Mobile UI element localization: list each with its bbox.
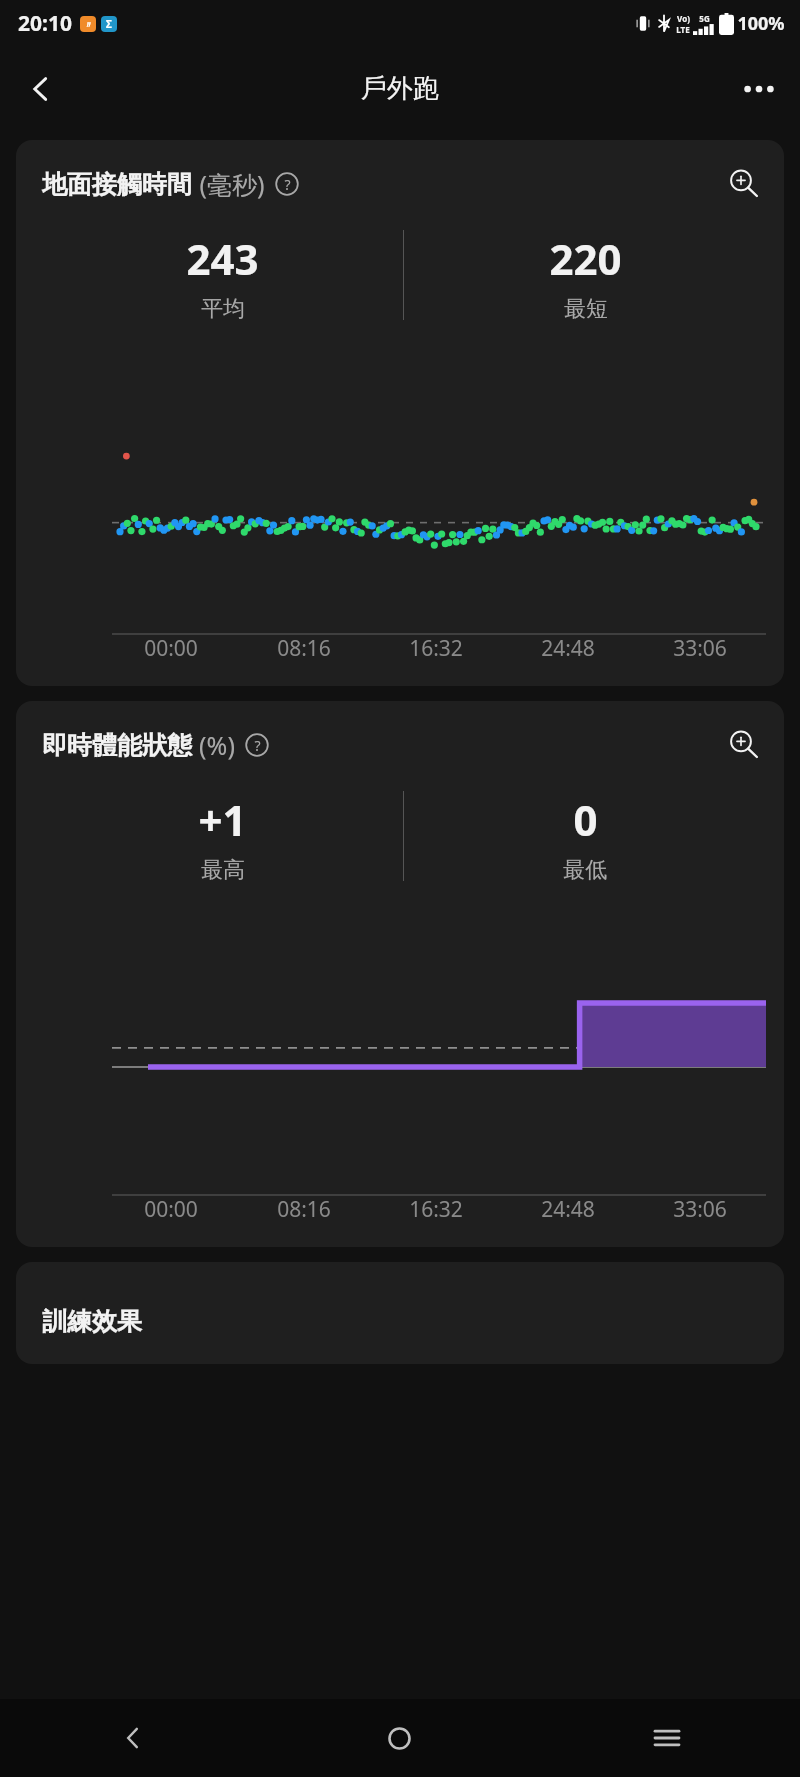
staticText: 0	[573, 791, 598, 848]
staticText: 即時體能狀態	[42, 730, 192, 761]
button[interactable]: Expand chart	[722, 723, 766, 767]
staticText: 20:10	[18, 9, 72, 38]
button[interactable]: 訓練效果	[16, 1262, 784, 1364]
staticText: 地面接觸時間	[42, 169, 192, 200]
button[interactable]: 地面接觸時間	[16, 140, 784, 686]
button[interactable]: Expand chart	[722, 162, 766, 206]
staticText: Σ	[106, 17, 112, 31]
button[interactable]: Help	[273, 170, 301, 198]
button[interactable]: Help	[243, 731, 271, 759]
button[interactable]: Back	[10, 58, 72, 120]
button[interactable]: 即時體能狀態	[16, 701, 784, 1247]
staticText: 16:32	[409, 1195, 463, 1224]
staticText: (%)	[199, 728, 235, 762]
staticText: (毫秒)	[199, 167, 265, 201]
staticText: 08:16	[277, 1195, 331, 1224]
staticText: 最低	[563, 856, 607, 884]
staticText: 最短	[564, 295, 608, 323]
staticText: +1	[198, 791, 247, 848]
staticText: LTE	[676, 24, 690, 35]
staticText: 16:32	[409, 634, 463, 663]
staticText: 平均	[201, 295, 245, 323]
staticText: 220	[549, 230, 622, 287]
button[interactable]: Recent apps	[533, 1699, 800, 1777]
staticText: 訓練效果	[42, 1306, 142, 1337]
button[interactable]: Home	[266, 1699, 533, 1777]
staticText: ?	[254, 736, 261, 755]
staticText: 24:48	[541, 634, 595, 663]
staticText: 33:06	[673, 1195, 727, 1224]
staticText: Vo)	[677, 13, 690, 24]
staticText: 100%	[737, 11, 785, 36]
staticText: 〃	[84, 19, 93, 30]
staticText: 243	[186, 230, 259, 287]
staticText: 33:06	[673, 634, 727, 663]
staticText: 00:00	[144, 634, 198, 663]
staticText: 戶外跑	[361, 72, 439, 105]
staticText: 24:48	[541, 1195, 595, 1224]
staticText: ?	[284, 175, 291, 194]
staticText: 最高	[201, 856, 245, 884]
staticText: 08:16	[277, 634, 331, 663]
staticText: 5G	[699, 13, 710, 24]
button[interactable]: Back	[0, 1699, 266, 1777]
staticText: 00:00	[144, 1195, 198, 1224]
button[interactable]: More options	[728, 58, 790, 120]
